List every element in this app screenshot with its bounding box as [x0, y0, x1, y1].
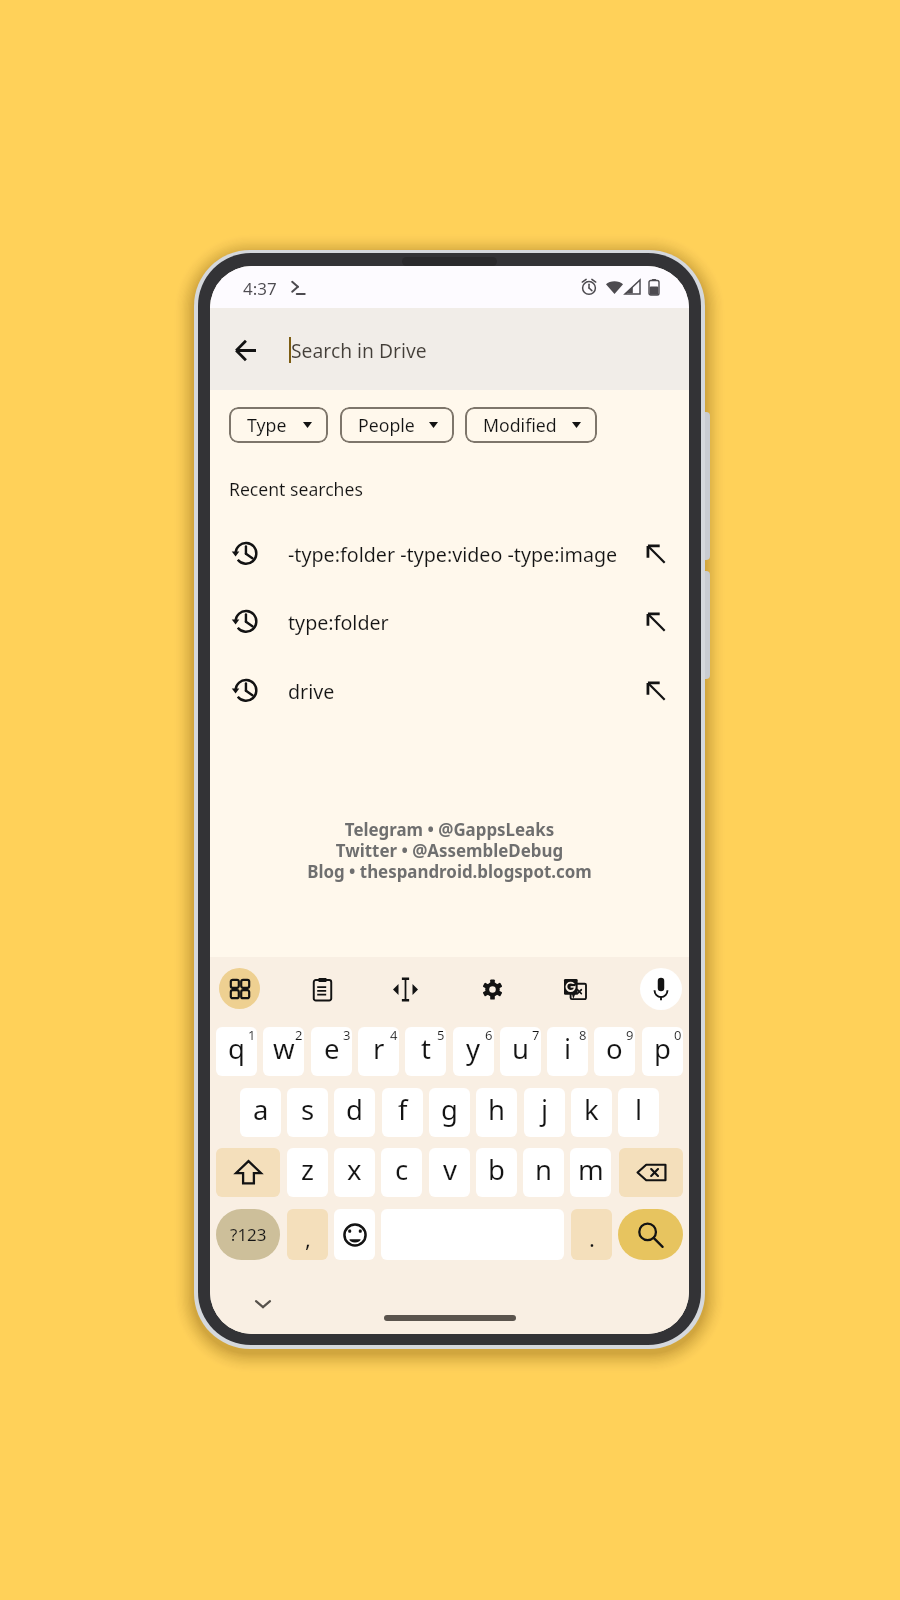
button[interactable]: Back — [223, 328, 268, 373]
button[interactable]: z — [287, 1148, 328, 1197]
staticText: . — [589, 1223, 595, 1253]
staticText: c — [395, 1151, 409, 1188]
button[interactable]: u — [500, 1027, 541, 1076]
button[interactable]: e — [311, 1027, 352, 1076]
staticText: z — [301, 1151, 314, 1188]
staticText: -type:folder -type:video -type:image — [288, 541, 618, 568]
button[interactable]: f — [382, 1088, 423, 1137]
button[interactable]: -type:folder -type:video -type:image — [210, 519, 689, 587]
staticText: n — [535, 1151, 552, 1188]
button[interactable]: Type — [229, 407, 328, 443]
staticText: Recent searches — [229, 477, 363, 501]
staticText: 9 — [626, 1027, 634, 1044]
staticText: 6 — [485, 1027, 493, 1044]
staticText: f — [398, 1091, 408, 1128]
button[interactable]: t — [405, 1027, 446, 1076]
button[interactable]: o — [594, 1027, 635, 1076]
button[interactable]: c — [381, 1148, 422, 1197]
button[interactable]: Settings — [471, 968, 513, 1010]
staticText: y — [466, 1030, 481, 1067]
staticText: Type — [247, 413, 287, 437]
button[interactable]: d — [334, 1088, 375, 1137]
button[interactable]: r — [358, 1027, 399, 1076]
staticText: x — [347, 1151, 362, 1188]
staticText: w — [273, 1030, 295, 1067]
staticText: q — [228, 1030, 245, 1067]
staticText: a — [253, 1091, 269, 1128]
staticText: t — [421, 1030, 431, 1067]
button[interactable]: b — [476, 1148, 517, 1197]
button[interactable]: Backspace — [619, 1148, 683, 1197]
button[interactable]: Emoji — [334, 1209, 375, 1260]
button[interactable]: Keyboard toolbox — [219, 968, 260, 1009]
staticText: j — [541, 1091, 549, 1128]
staticText: l — [635, 1091, 643, 1128]
staticText: 1 — [248, 1027, 256, 1044]
staticText: 4:37 — [243, 277, 277, 300]
staticText: Modified — [483, 413, 557, 437]
button[interactable]: Shift — [216, 1148, 280, 1197]
button[interactable]: Voice input — [640, 968, 682, 1010]
button[interactable]: l — [618, 1088, 659, 1137]
staticText: 8 — [579, 1027, 587, 1044]
button[interactable]: j — [524, 1088, 565, 1137]
staticText: type:folder — [288, 609, 389, 636]
button[interactable]: h — [476, 1088, 517, 1137]
staticText: e — [324, 1030, 340, 1067]
button[interactable]: Modified — [465, 407, 597, 443]
button[interactable]: Clipboard — [301, 968, 343, 1010]
button[interactable]: a — [240, 1088, 281, 1137]
button[interactable]: Translate — [554, 968, 596, 1010]
button[interactable]: Search — [618, 1209, 683, 1260]
staticText: Search in Drive — [291, 337, 427, 363]
staticText: drive — [288, 678, 335, 705]
button[interactable]: type:folder — [210, 587, 689, 655]
button[interactable]: m — [570, 1148, 611, 1197]
button[interactable]: x — [334, 1148, 375, 1197]
staticText: 2 — [295, 1027, 303, 1044]
button[interactable]: y — [453, 1027, 494, 1076]
button[interactable]: ?123 — [216, 1209, 280, 1260]
staticText: i — [564, 1030, 572, 1067]
button[interactable]: . — [571, 1209, 612, 1260]
staticText: k — [584, 1091, 599, 1128]
staticText: s — [301, 1091, 315, 1128]
staticText: 7 — [532, 1027, 540, 1044]
button[interactable]: q — [216, 1027, 257, 1076]
staticText: g — [441, 1091, 458, 1128]
staticText: r — [373, 1030, 385, 1067]
staticText: ?123 — [230, 1223, 267, 1246]
staticText: b — [488, 1151, 505, 1188]
button[interactable]: n — [523, 1148, 564, 1197]
button[interactable]: , — [287, 1209, 328, 1260]
staticText: Telegram • @GappsLeaks Twitter • @Assemb… — [210, 818, 689, 883]
button[interactable]: drive — [210, 656, 689, 724]
staticText: 4 — [390, 1027, 398, 1044]
staticText: h — [488, 1091, 505, 1128]
button[interactable]: s — [287, 1088, 328, 1137]
staticText: 0 — [674, 1027, 682, 1044]
button[interactable]: g — [429, 1088, 470, 1137]
button[interactable]: k — [571, 1088, 612, 1137]
staticText: m — [578, 1151, 604, 1188]
button[interactable]: p — [642, 1027, 683, 1076]
button[interactable]: w — [263, 1027, 304, 1076]
button[interactable]: Text editing — [384, 968, 426, 1010]
button[interactable]: i — [547, 1027, 588, 1076]
staticText: 5 — [437, 1027, 445, 1044]
staticText: 3 — [343, 1027, 351, 1044]
staticText: d — [346, 1091, 363, 1128]
staticText: v — [443, 1151, 457, 1188]
button[interactable]: v — [429, 1148, 470, 1197]
staticText: People — [358, 413, 415, 437]
staticText: , — [305, 1223, 311, 1253]
button[interactable]: People — [340, 407, 454, 443]
staticText: u — [512, 1030, 529, 1067]
staticText: p — [654, 1030, 671, 1067]
staticText: o — [606, 1030, 623, 1067]
